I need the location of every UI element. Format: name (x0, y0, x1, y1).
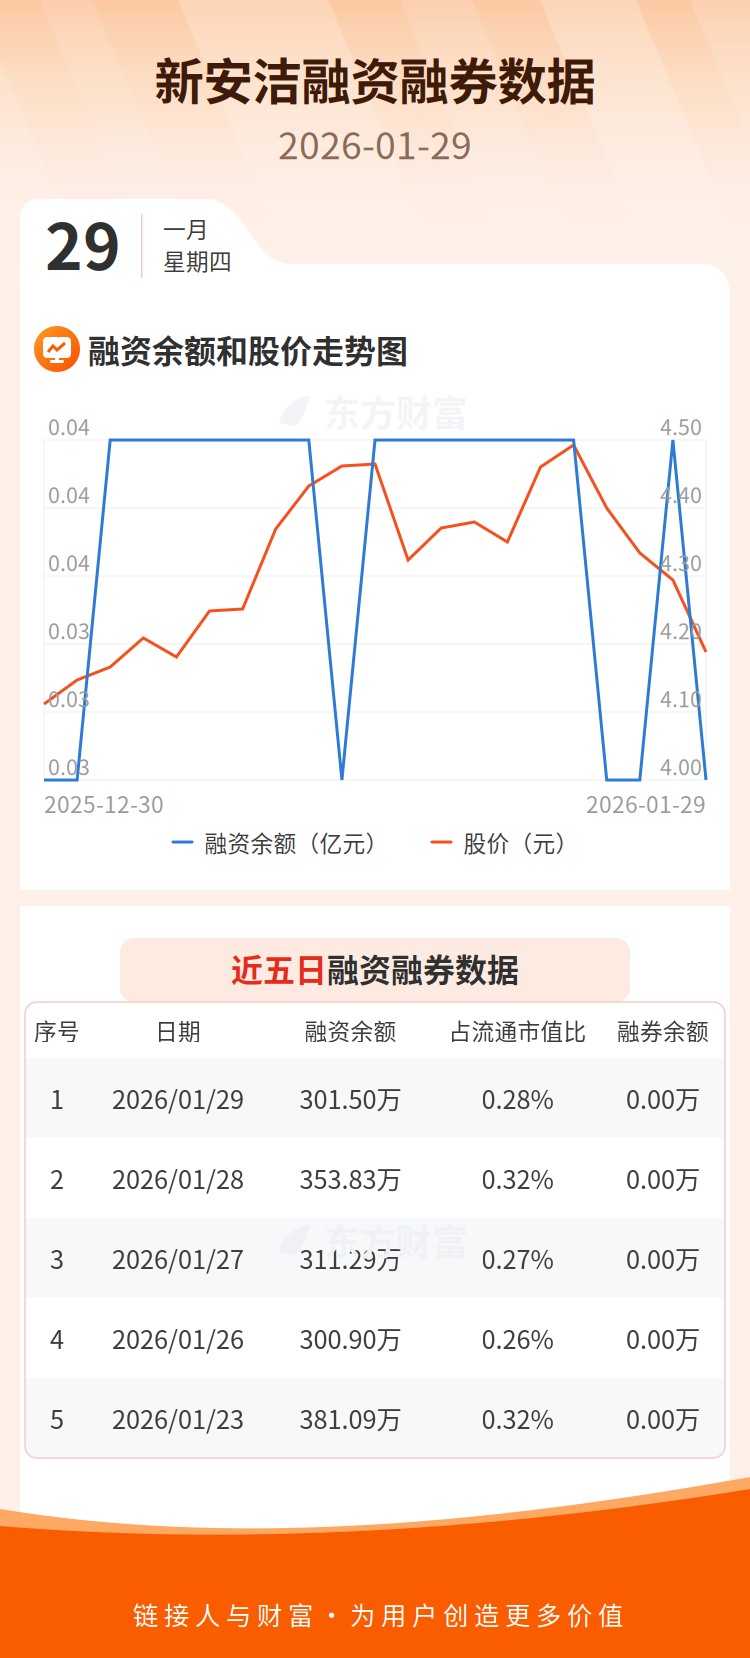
staticText: 2025-12-30 (44, 787, 164, 819)
staticText: 4.00 (660, 751, 702, 781)
staticText: 占流通市值比 (448, 1014, 586, 1046)
staticText: 融资余额 (304, 1014, 396, 1046)
staticText: 0.03 (48, 751, 90, 781)
staticText: 4.10 (660, 683, 702, 713)
staticText: 4.30 (660, 547, 702, 577)
staticText: 2026/01/26 (112, 1320, 244, 1356)
staticText: 融券余额 (617, 1014, 709, 1046)
staticText: 4.20 (660, 615, 702, 645)
staticText: 0.32% (481, 1160, 553, 1196)
staticText: 近五日 (231, 945, 327, 991)
staticText: 0.03 (48, 683, 90, 713)
staticText: 2026-01-29 (278, 116, 472, 170)
staticText: 0.04 (48, 547, 90, 577)
staticText: 2026/01/27 (112, 1240, 244, 1276)
staticText: 0.04 (48, 479, 90, 509)
staticText: 股价（元） (463, 826, 578, 858)
staticText: 4.50 (660, 411, 702, 441)
staticText: 0.32% (481, 1400, 553, 1436)
staticText: 1 (50, 1080, 64, 1116)
staticText: 0.03 (48, 615, 90, 645)
staticText: 300.90万 (299, 1320, 401, 1356)
staticText: 0.00万 (626, 1080, 700, 1116)
staticText: 2 (50, 1160, 64, 1196)
staticText: 0.28% (481, 1080, 553, 1116)
staticText: 0.00万 (626, 1320, 700, 1356)
staticText: 4 (50, 1320, 64, 1356)
staticText: 0.00万 (626, 1160, 700, 1196)
staticText: 0.04 (48, 411, 90, 441)
staticText: 序号 (34, 1014, 80, 1046)
staticText: 东方财富 (324, 1214, 468, 1266)
staticText: 融资余额和股价走势图 (88, 326, 408, 372)
staticText: 0.00万 (626, 1400, 700, 1436)
staticText: 353.83万 (299, 1160, 401, 1196)
staticText: 29 (45, 196, 121, 288)
staticText: 5 (50, 1400, 64, 1436)
staticText: 0.26% (481, 1320, 553, 1356)
staticText: 311.29万 (299, 1240, 401, 1276)
staticText: 星期四 (163, 244, 232, 276)
staticText: 新安洁融资融券数据 (154, 42, 595, 114)
staticText: 3 (50, 1240, 64, 1276)
staticText: 东方财富 (324, 385, 468, 437)
staticText: 融资融券数据 (327, 945, 519, 991)
staticText: 301.50万 (299, 1080, 401, 1116)
staticText: 4.40 (660, 479, 702, 509)
staticText: 0.00万 (626, 1240, 700, 1276)
staticText: 2026/01/23 (112, 1400, 244, 1436)
staticText: 链接人与财富·为用户创造更多价值 (133, 1596, 623, 1632)
staticText: 0.27% (481, 1240, 553, 1276)
staticText: 一月 (163, 212, 209, 244)
staticText: 2026/01/28 (112, 1160, 244, 1196)
staticText: 381.09万 (299, 1400, 401, 1436)
staticText: 融资余额（亿元） (204, 826, 388, 858)
staticText: 日期 (155, 1014, 201, 1046)
staticText: 2026/01/29 (112, 1080, 244, 1116)
staticText: 2026-01-29 (586, 787, 706, 819)
